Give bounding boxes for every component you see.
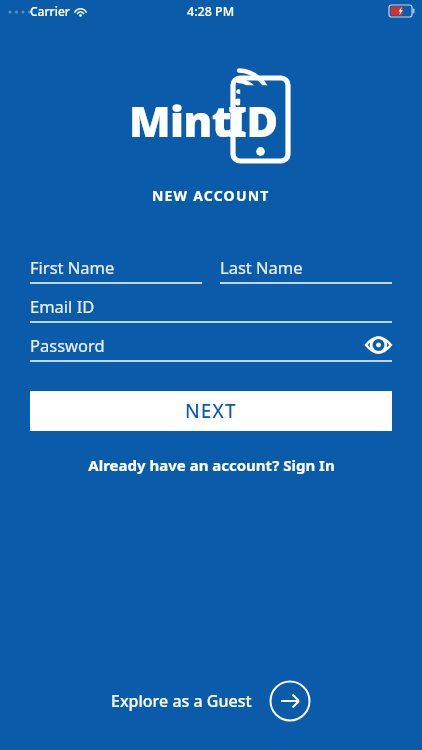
other: Continue as guest xyxy=(269,680,311,722)
staticText: ID xyxy=(228,91,278,150)
button[interactable]: Last Name xyxy=(220,252,392,284)
staticText: NEW ACCOUNT xyxy=(152,186,270,205)
staticText: Mint xyxy=(129,91,232,150)
button[interactable]: Explore as a Guest xyxy=(103,676,319,726)
staticText: Email ID xyxy=(30,295,95,317)
staticText: Already have an account? Sign In xyxy=(88,455,335,475)
other: Show password xyxy=(365,336,392,354)
button[interactable]: First Name xyxy=(30,252,202,284)
button[interactable]: Password xyxy=(30,330,392,362)
staticText: Explore as a Guest xyxy=(111,690,252,712)
button[interactable]: Email ID xyxy=(30,291,392,323)
button[interactable]: NEXT xyxy=(30,391,392,431)
staticText: First Name xyxy=(30,256,115,278)
staticText: Password xyxy=(30,334,105,356)
staticText: NEXT xyxy=(185,398,237,424)
staticText: Carrier xyxy=(30,3,70,19)
staticText: Last Name xyxy=(220,256,303,278)
button[interactable]: Already have an account? Sign In xyxy=(30,455,392,475)
staticText: 4:28 PM xyxy=(187,3,235,20)
